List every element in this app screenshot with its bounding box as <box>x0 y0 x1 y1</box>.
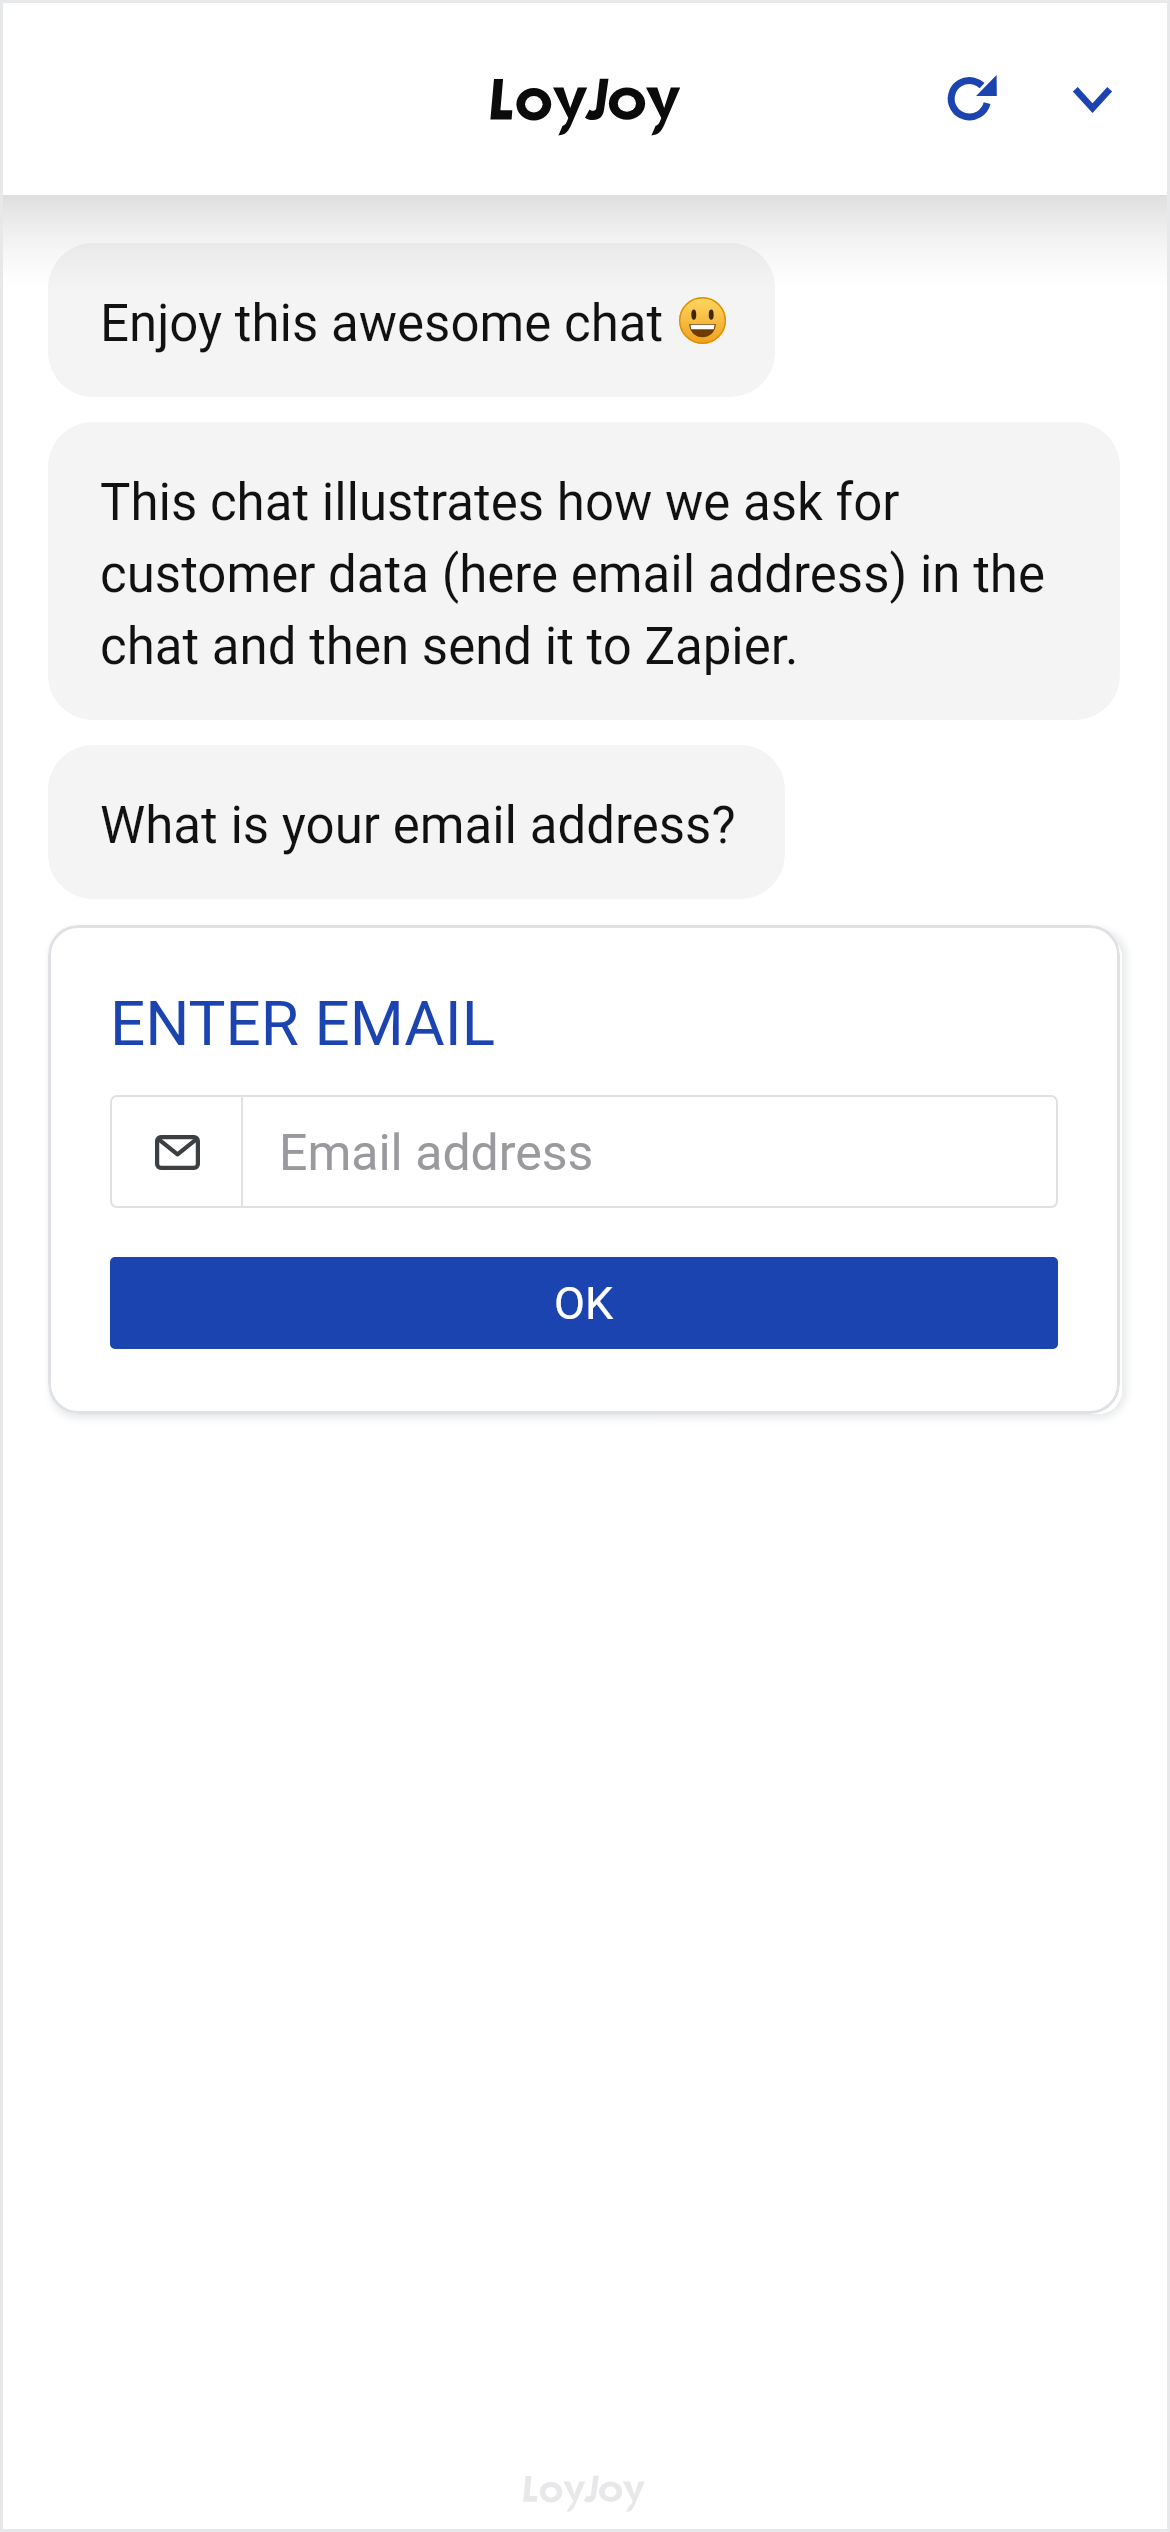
button[interactable]: Email address <box>110 1095 1058 1208</box>
staticText: Email address <box>279 1124 594 1183</box>
staticText: OK <box>554 1277 614 1330</box>
button[interactable]: Restart chat <box>916 50 1028 147</box>
staticText: Enjoy this awesome chat <box>100 284 664 356</box>
staticText: This chat illustrates how we ask for cus… <box>100 463 1072 679</box>
staticText: What is your email address? <box>100 786 736 858</box>
button[interactable]: Collapse chat <box>1036 50 1148 147</box>
button[interactable]: OK <box>110 1257 1058 1349</box>
staticText: ENTER EMAIL <box>110 987 496 1060</box>
